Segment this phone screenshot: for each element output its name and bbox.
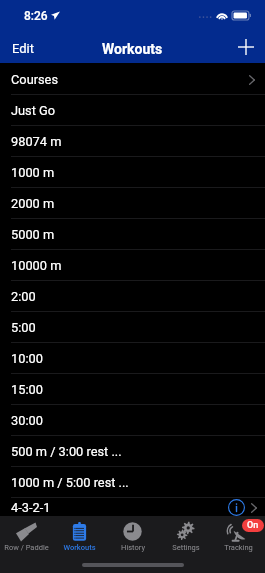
button[interactable]: Info: [228, 499, 245, 516]
button[interactable]: 98074 m: [0, 126, 265, 157]
staticText: Tracking: [224, 543, 253, 552]
button[interactable]: Add workout: [227, 30, 265, 63]
button[interactable]: 5000 m: [0, 219, 265, 250]
staticText: 2000 m: [11, 196, 55, 211]
staticText: Edit: [12, 41, 35, 56]
staticText: 10:00: [11, 351, 43, 366]
button[interactable]: On: [212, 516, 265, 556]
staticText: 98074 m: [11, 134, 62, 149]
button[interactable]: 2000 m: [0, 188, 265, 219]
staticText: 5:00: [11, 320, 36, 335]
staticText: 5000 m: [11, 227, 55, 242]
button[interactable]: 10:00: [0, 343, 265, 374]
staticText: 10000 m: [11, 258, 62, 273]
staticText: Row / Paddle: [4, 543, 49, 552]
staticText: Just Go: [11, 103, 56, 118]
staticText: 30:00: [11, 413, 43, 428]
button[interactable]: 1000 m / 5:00 rest ...: [0, 467, 265, 498]
button[interactable]: Settings: [159, 516, 212, 556]
staticText: 1000 m / 5:00 rest ...: [11, 475, 129, 490]
staticText: On: [247, 520, 259, 531]
staticText: 500 m / 3:00 rest ...: [11, 444, 122, 459]
button[interactable]: History: [106, 516, 159, 556]
staticText: 8:26: [24, 9, 48, 23]
button[interactable]: Courses: [0, 64, 265, 95]
button[interactable]: 5:00: [0, 312, 265, 343]
button[interactable]: Row / Paddle: [0, 516, 53, 556]
staticText: 4-3-2-1: [11, 500, 51, 515]
button[interactable]: 2:00: [0, 281, 265, 312]
button[interactable]: 1000 m: [0, 157, 265, 188]
staticText: Courses: [11, 72, 59, 87]
button[interactable]: Just Go: [0, 95, 265, 126]
staticText: Settings: [172, 543, 200, 552]
button[interactable]: 15:00: [0, 374, 265, 405]
staticText: History: [121, 543, 145, 552]
button[interactable]: 30:00: [0, 405, 265, 436]
button[interactable]: Workouts: [53, 516, 106, 556]
staticText: 2:00: [11, 289, 36, 304]
staticText: Workouts: [63, 543, 96, 552]
button[interactable]: 4-3-2-1: [0, 498, 265, 517]
button[interactable]: 10000 m: [0, 250, 265, 281]
staticText: Workouts: [102, 41, 163, 57]
button[interactable]: Edit: [0, 30, 47, 63]
button[interactable]: 500 m / 3:00 rest ...: [0, 436, 265, 467]
staticText: 15:00: [11, 382, 43, 397]
staticText: 1000 m: [11, 165, 55, 180]
